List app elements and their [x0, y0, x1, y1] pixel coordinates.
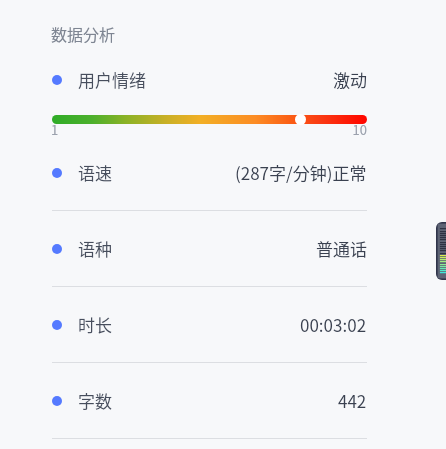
button[interactable]: 语种	[0, 223, 446, 275]
staticText: 字数	[78, 388, 112, 413]
staticText: 语速	[78, 160, 112, 185]
button[interactable]: Audio level meter	[436, 222, 446, 280]
staticText: (287字/分钟)正常	[235, 160, 367, 185]
staticText: 普通话	[316, 236, 367, 261]
staticText: 00:03:02	[300, 312, 367, 337]
button[interactable]: 时长	[0, 299, 446, 351]
button[interactable]: Emotion level	[295, 114, 306, 125]
staticText: 442	[338, 388, 367, 413]
staticText: 时长	[78, 312, 112, 337]
staticText: 激动	[333, 67, 367, 92]
staticText: 数据分析	[51, 22, 116, 45]
button[interactable]: 字数	[0, 375, 446, 427]
staticText: 语种	[78, 236, 112, 261]
button[interactable]: 用户情绪	[0, 54, 446, 106]
staticText: 用户情绪	[78, 67, 146, 92]
button[interactable]: 语速	[0, 147, 446, 199]
staticText: 1	[51, 120, 59, 139]
staticText: 10	[327, 120, 367, 139]
